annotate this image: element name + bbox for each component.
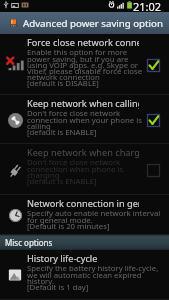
staticText: Keep network when calling <box>27 97 139 109</box>
staticText: Don't force close network connection whe… <box>27 157 143 186</box>
button[interactable]: Toggle Force close network connection <box>137 52 169 78</box>
staticText: 21:02 <box>133 0 162 11</box>
staticText: Network connection in general <box>27 197 139 209</box>
staticText: Advanced power saving option <box>23 17 163 30</box>
button[interactable]: Up <box>0 12 169 34</box>
staticText: Specify auto enable network interval for… <box>27 208 167 231</box>
staticText: Keep network when charging <box>27 146 139 158</box>
button[interactable]: Toggle Keep network when calling <box>137 107 169 133</box>
staticText: Enable this option for more power saving… <box>27 47 143 88</box>
staticText: Specify the battery history life-cycle, … <box>27 263 167 292</box>
staticText: Don't force close network connection whe… <box>27 108 143 137</box>
staticText: Misc options <box>5 237 53 248</box>
staticText: History life-cycle <box>27 252 98 264</box>
button[interactable]: Keep network when charging <box>0 144 169 195</box>
button[interactable]: History life-cycle <box>0 250 169 300</box>
button[interactable]: Force close network connection <box>0 34 169 95</box>
button[interactable]: Network connection in general <box>0 195 169 235</box>
button[interactable]: Keep network when calling <box>0 95 169 144</box>
staticText: Force close network connection <box>27 36 139 48</box>
button[interactable]: Toggle Keep network when charging <box>137 157 169 183</box>
